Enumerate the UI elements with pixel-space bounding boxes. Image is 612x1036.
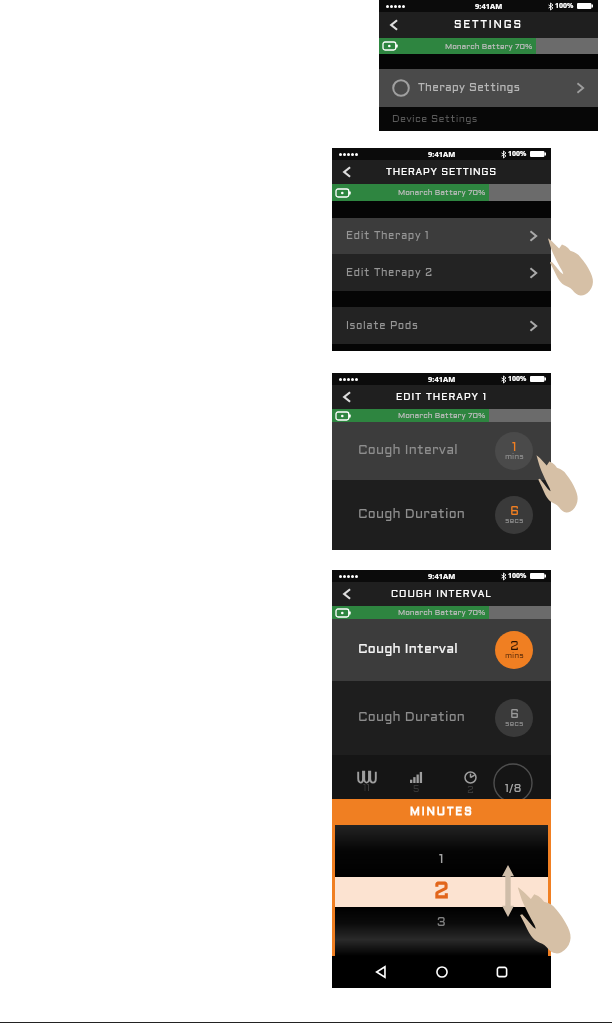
staticText: EDIT THERAPY 1 — [396, 393, 488, 402]
staticText: 1/8 — [505, 784, 522, 794]
button[interactable]: Edit Therapy 2 — [332, 254, 551, 291]
staticText: 100% — [555, 1, 574, 11]
staticText: COUGH INTERVAL — [391, 590, 492, 599]
staticText: Isolate Pods — [346, 321, 419, 331]
staticText: Monarch Battery 70% — [398, 609, 486, 616]
staticText: SETTINGS — [454, 20, 523, 30]
button[interactable]: Back — [370, 961, 392, 983]
staticText: 2 — [510, 641, 519, 653]
button[interactable]: Cough Interval — [332, 422, 551, 480]
button[interactable]: Back — [340, 165, 354, 179]
staticText: mins — [505, 453, 524, 460]
staticText: 1 — [512, 442, 517, 454]
button[interactable]: Cough Duration — [332, 480, 551, 550]
button[interactable]: Cough pressure — [350, 755, 384, 799]
staticText: 3 — [437, 917, 446, 929]
staticText: THERAPY SETTINGS — [386, 168, 497, 177]
staticText: Therapy Settings — [418, 83, 521, 93]
button[interactable]: Back — [387, 18, 401, 32]
staticText: Monarch Battery 70% — [398, 412, 486, 419]
staticText: Monarch Battery 70% — [445, 43, 533, 50]
staticText: Edit Therapy 1 — [346, 231, 430, 241]
staticText: 11 — [363, 784, 371, 793]
staticText: 2 — [434, 882, 450, 902]
staticText: Cough Duration — [358, 509, 466, 521]
staticText: 100% — [508, 149, 527, 159]
button[interactable]: Recent apps — [491, 961, 513, 983]
button[interactable]: Back — [340, 390, 354, 404]
button[interactable]: Duration — [456, 755, 484, 799]
staticText: Cough Duration — [358, 712, 466, 724]
staticText: 100% — [508, 374, 527, 384]
staticText: 6 — [510, 506, 520, 518]
staticText: 9:41AM — [428, 374, 456, 384]
button[interactable]: Intensity — [402, 755, 430, 799]
staticText: 5 — [413, 785, 420, 794]
staticText: secs — [505, 517, 524, 524]
button[interactable]: Back — [340, 587, 354, 601]
button[interactable]: Cough Duration — [332, 681, 551, 755]
staticText: Edit Therapy 2 — [346, 268, 433, 278]
staticText: 2 — [467, 786, 474, 795]
staticText: 6 — [510, 709, 520, 721]
staticText: 1 — [439, 854, 444, 866]
staticText: MINUTES — [410, 807, 474, 817]
staticText: 9:41AM — [475, 1, 503, 11]
staticText: 9:41AM — [428, 149, 456, 159]
button[interactable]: Isolate Pods — [332, 307, 551, 344]
button[interactable]: Session progress — [487, 755, 539, 799]
staticText: Device Settings — [392, 115, 478, 124]
staticText: Cough Interval — [358, 644, 458, 656]
button[interactable]: Edit Therapy 1 — [332, 218, 551, 254]
staticText: 100% — [508, 571, 527, 581]
button[interactable]: Device Settings — [379, 107, 598, 131]
staticText: mins — [505, 652, 524, 659]
staticText: Cough Interval — [358, 445, 458, 457]
button[interactable]: Cough Interval — [332, 619, 551, 681]
staticText: 9:41AM — [428, 571, 456, 581]
button[interactable]: Therapy Settings — [379, 69, 598, 107]
staticText: secs — [505, 720, 524, 727]
staticText: Monarch Battery 70% — [398, 189, 486, 196]
button[interactable]: Home — [431, 961, 453, 983]
